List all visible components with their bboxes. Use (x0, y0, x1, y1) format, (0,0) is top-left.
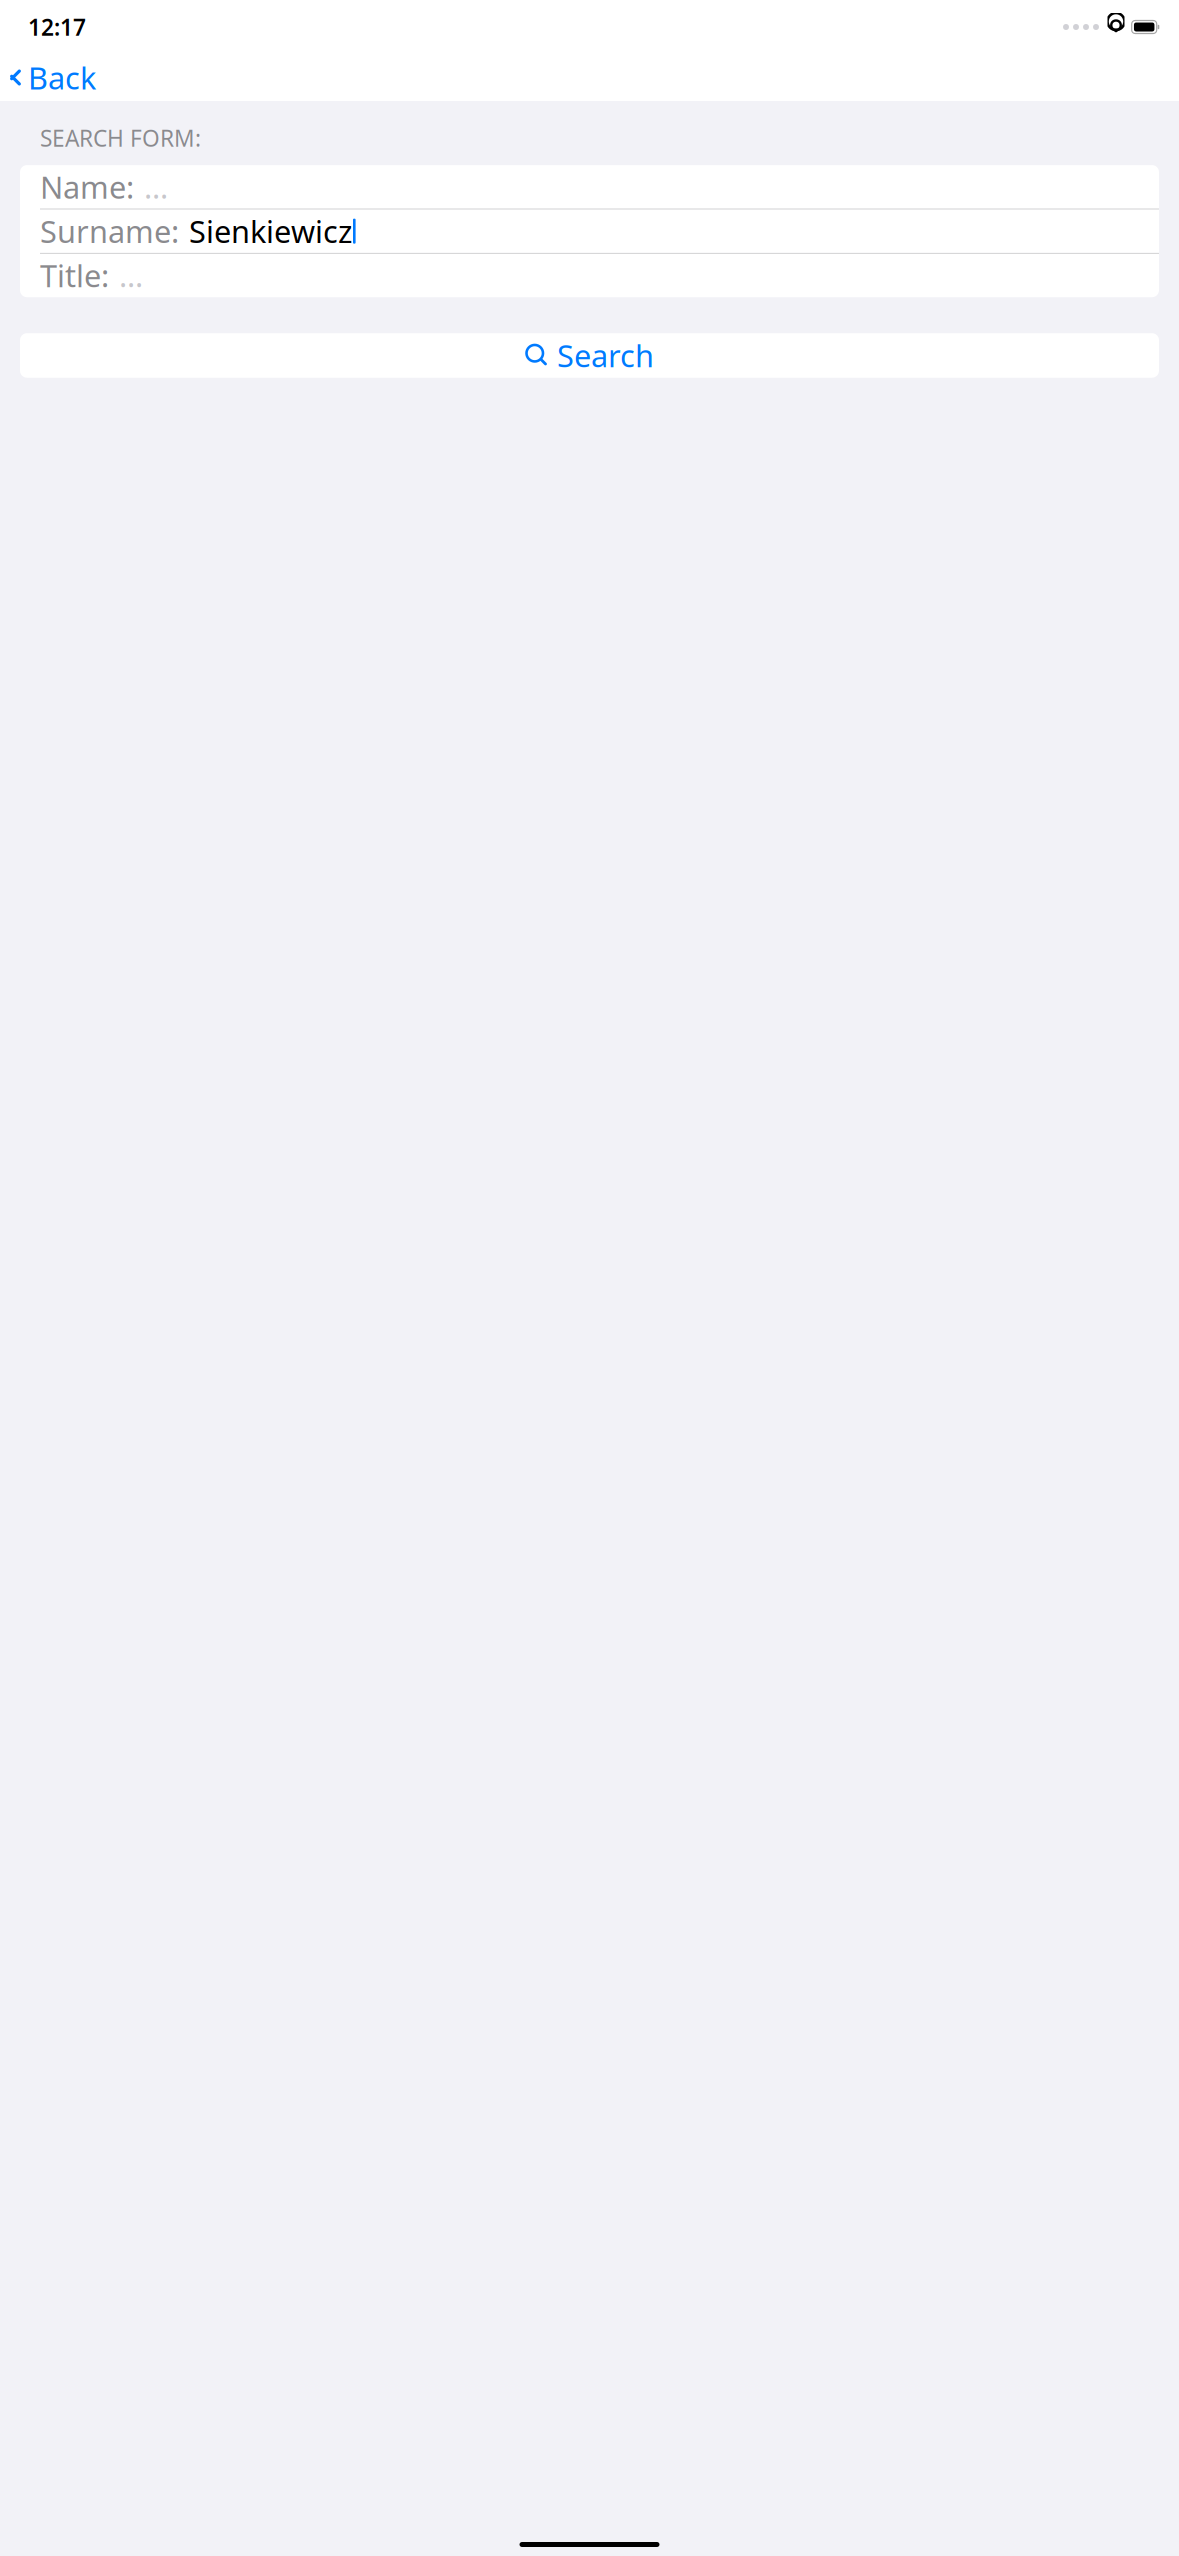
staticText: Surname: (40, 211, 179, 251)
staticText: SEARCH FORM: (40, 123, 201, 153)
staticText: Sienkiewicz (189, 211, 352, 251)
staticText: ... (144, 166, 168, 207)
staticText: Search (557, 335, 654, 376)
staticText: ... (119, 255, 143, 296)
button[interactable]: Back (0, 55, 108, 99)
button[interactable]: Name: (20, 165, 1159, 209)
staticText: 12:17 (28, 12, 86, 42)
staticText: Name: (40, 166, 134, 207)
button[interactable]: Surname: (20, 209, 1159, 253)
button[interactable]: Title: (20, 254, 1159, 297)
staticText: Back (28, 57, 96, 98)
staticText: Title: (40, 255, 109, 296)
button[interactable]: Search (20, 333, 1159, 378)
